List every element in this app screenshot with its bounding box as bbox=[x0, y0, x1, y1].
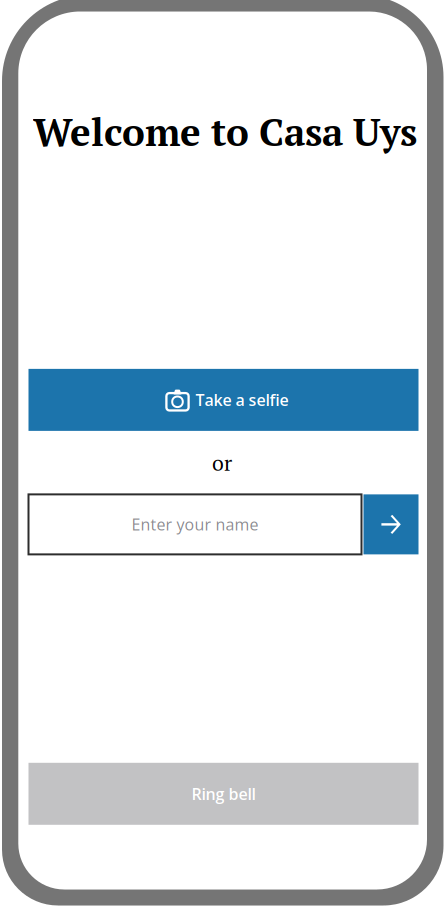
staticText: Take a selfie bbox=[195, 389, 288, 411]
button[interactable]: Enter your name bbox=[28, 494, 361, 554]
button[interactable]: Submit name bbox=[363, 494, 418, 554]
staticText: Ring bell bbox=[191, 783, 255, 805]
staticText: Welcome to Casa Uys bbox=[33, 106, 417, 157]
staticText: Enter your name bbox=[131, 513, 258, 535]
button[interactable]: Ring bell bbox=[28, 763, 418, 825]
staticText: or bbox=[212, 448, 232, 477]
button[interactable]: Take a selfie bbox=[28, 369, 418, 431]
